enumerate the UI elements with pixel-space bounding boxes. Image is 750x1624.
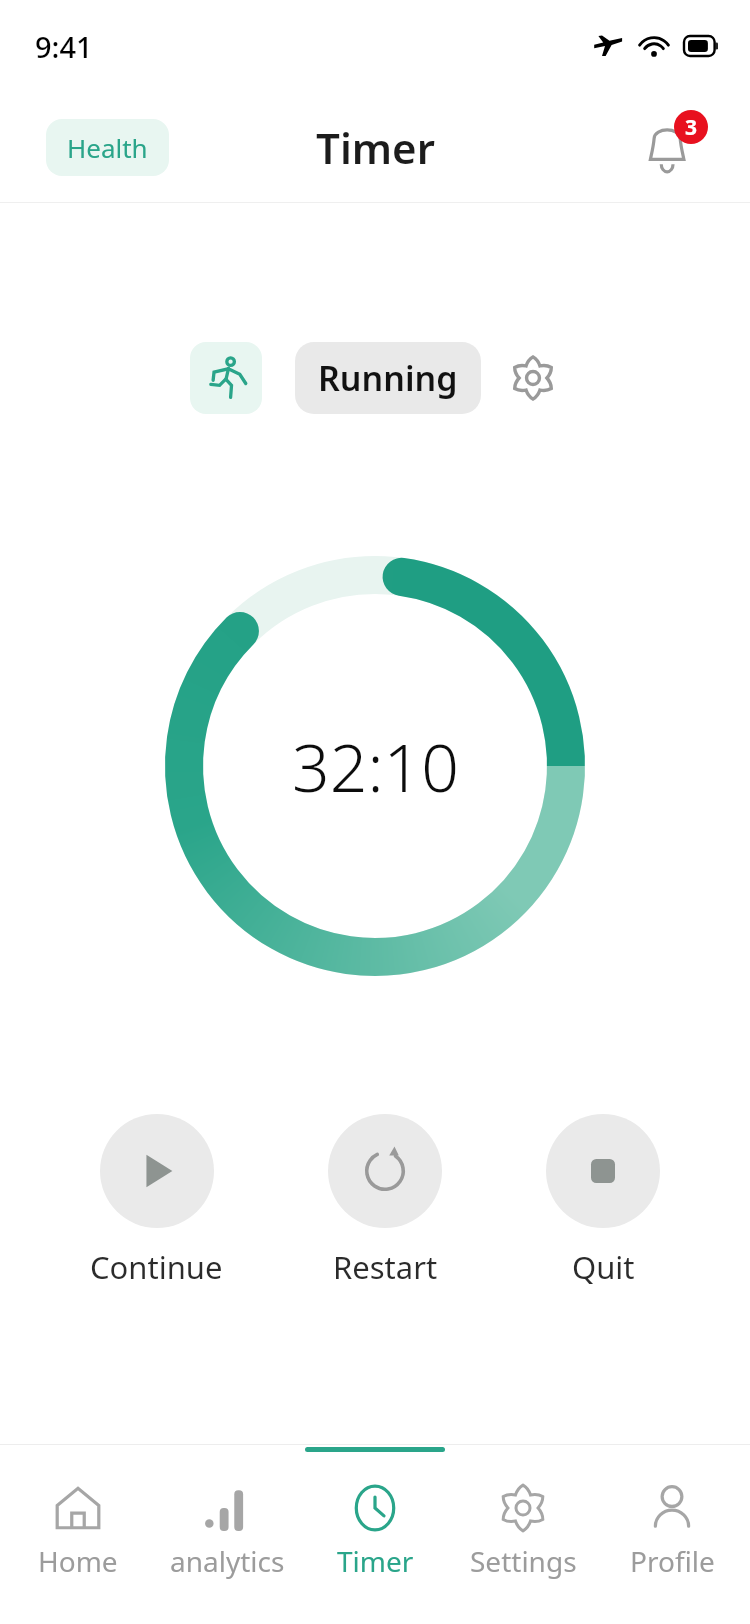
button[interactable]: analytics bbox=[157, 1444, 297, 1580]
button[interactable]: Timer bbox=[305, 1444, 445, 1580]
button[interactable]: Activity settings bbox=[505, 350, 561, 406]
button[interactable]: Health bbox=[46, 119, 169, 176]
staticText: Home bbox=[38, 1542, 118, 1580]
button[interactable]: Notifications bbox=[638, 116, 700, 178]
button[interactable]: Settings bbox=[453, 1444, 593, 1580]
staticText: Continue bbox=[90, 1246, 223, 1288]
button[interactable]: Home bbox=[8, 1444, 148, 1580]
staticText: Timer bbox=[316, 119, 435, 176]
staticText: Settings bbox=[470, 1542, 577, 1580]
button[interactable]: Running activity bbox=[190, 342, 262, 414]
staticText: Running bbox=[318, 355, 458, 401]
button[interactable]: Restart bbox=[328, 1114, 442, 1288]
button[interactable]: Running bbox=[295, 342, 481, 414]
staticText: 32:10 bbox=[292, 721, 459, 811]
staticText: 3 bbox=[685, 113, 698, 142]
staticText: 9:41 bbox=[35, 27, 93, 66]
button[interactable]: Profile bbox=[602, 1444, 742, 1580]
staticText: Restart bbox=[333, 1246, 438, 1288]
staticText: analytics bbox=[170, 1542, 285, 1580]
staticText: Profile bbox=[630, 1542, 715, 1580]
staticText: Timer bbox=[337, 1542, 414, 1580]
staticText: Quit bbox=[572, 1246, 635, 1288]
button[interactable]: Quit bbox=[546, 1114, 660, 1288]
button[interactable]: Continue bbox=[90, 1114, 223, 1288]
staticText: Health bbox=[67, 130, 148, 165]
